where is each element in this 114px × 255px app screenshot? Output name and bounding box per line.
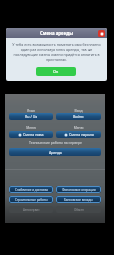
button[interactable]: Строительные работы <box>9 196 53 203</box>
button[interactable]: Закрыть <box>98 30 105 37</box>
staticText: Снабжение и доставка <box>15 188 48 192</box>
button[interactable]: Смена ника <box>9 131 53 138</box>
staticText: Обмен <box>74 208 84 212</box>
staticText: Язык <box>9 108 53 113</box>
button[interactable]: Обмен <box>56 206 101 213</box>
staticText: Смена пароля <box>69 132 94 137</box>
button[interactable]: Автосервис <box>9 206 53 213</box>
staticText: Ок <box>53 69 59 74</box>
staticText: Аренда <box>49 150 62 155</box>
staticText: Ru / Ua <box>25 114 38 119</box>
staticText: Смена аренды <box>40 30 74 36</box>
staticText: Вход <box>56 108 101 113</box>
staticText: Меню <box>9 125 53 130</box>
button[interactable]: Банковские вклады <box>56 196 101 203</box>
button[interactable]: Ок <box>36 67 76 76</box>
staticText: Войти <box>73 114 84 119</box>
button[interactable]: Войти <box>56 113 101 120</box>
staticText: Технические работы на сервере <box>29 140 82 145</box>
button[interactable]: Ru / Ua <box>9 113 53 120</box>
button[interactable]: Аренда <box>9 148 101 156</box>
button[interactable]: Снабжение и доставка <box>9 186 53 193</box>
staticText: Автосервис <box>23 208 40 212</box>
button[interactable]: Смена пароля <box>56 131 101 138</box>
staticText: У тебя есть возможность поменять имя бес… <box>11 42 102 62</box>
staticText: Строительные работы <box>15 198 48 202</box>
staticText: Меню <box>56 125 101 130</box>
staticText: Банковские вклады <box>64 198 93 202</box>
staticText: Смена ника <box>23 132 44 137</box>
staticText: Финансовые операции <box>62 188 96 192</box>
button[interactable]: Финансовые операции <box>56 186 101 193</box>
